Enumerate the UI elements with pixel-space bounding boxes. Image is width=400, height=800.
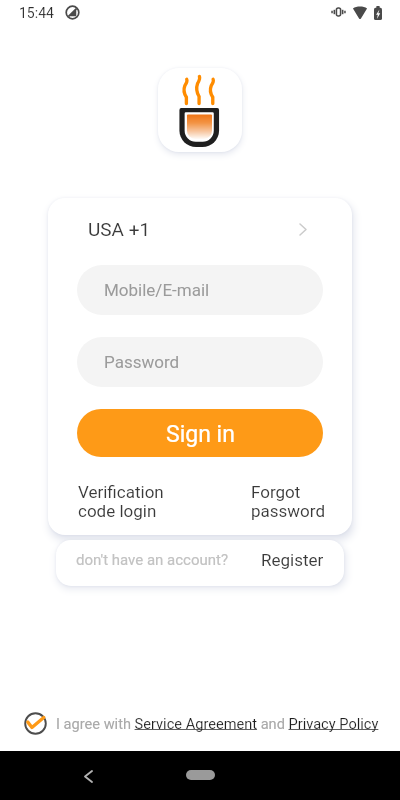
staticText: 15:44 [19,5,54,21]
button[interactable]: Sign in [77,409,323,457]
button[interactable]: USA +1 [48,205,352,253]
staticText: don't have an account? [76,551,229,569]
staticText: Mobile/E-mail [104,280,210,300]
button[interactable]: Password [77,337,323,387]
staticText: USA +1 [88,218,151,240]
button[interactable]: Verification code login [73,478,178,526]
staticText: Sign in [166,421,235,448]
staticText: I agree with Service Agreement and Priva… [56,715,379,732]
staticText: Password [104,352,180,372]
button[interactable]: Register [254,544,330,576]
button[interactable]: Do not disturb [65,5,80,20]
button[interactable]: Back [73,761,103,791]
staticText: Forgot password [251,482,326,522]
button[interactable]: Home [186,770,215,780]
staticText: Register [261,550,324,570]
button[interactable]: Mobile/E-mail [77,265,323,315]
staticText: Verification code login [78,482,164,522]
button[interactable]: Agree to terms [24,712,47,735]
button[interactable]: Forgot password [246,478,336,526]
